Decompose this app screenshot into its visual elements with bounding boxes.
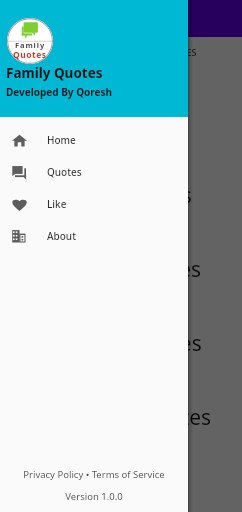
staticText: Version 1.0.0 — [65, 490, 123, 503]
other: Home — [12, 133, 27, 148]
staticText: FAMILY QUOTES — [127, 46, 197, 58]
button[interactable]: Quotes — [0, 156, 188, 188]
staticText: Friendship Quotes — [30, 403, 212, 432]
staticText: Family Quotes — [6, 64, 103, 82]
button[interactable]: Children Quotes — [0, 254, 242, 284]
button[interactable]: About — [0, 220, 188, 252]
button[interactable]: Like — [0, 188, 188, 220]
other: About — [12, 229, 27, 244]
button[interactable]: Birthday Quotes — [0, 328, 242, 358]
other: Quotes — [12, 165, 27, 180]
staticText: Developed By Qoresh — [6, 85, 113, 99]
staticText: Children Quotes — [41, 255, 202, 284]
staticText: Quotes — [47, 165, 82, 179]
other: Like — [12, 197, 27, 212]
staticText: Home — [47, 133, 76, 147]
button[interactable]: Privacy Policy • Terms of Service — [23, 468, 165, 481]
staticText: Family — [15, 40, 46, 50]
staticText: Birthday Quotes — [41, 329, 202, 358]
staticText: Quotes — [13, 49, 47, 61]
button[interactable]: Family Quotes — [0, 180, 242, 210]
staticText: Family Quotes — [51, 181, 192, 210]
staticText: Like — [47, 197, 67, 211]
button[interactable]: Home — [0, 124, 188, 156]
staticText: Privacy Policy • Terms of Service — [23, 468, 165, 481]
button[interactable]: Friendship Quotes — [0, 402, 242, 432]
staticText: About — [47, 229, 76, 243]
